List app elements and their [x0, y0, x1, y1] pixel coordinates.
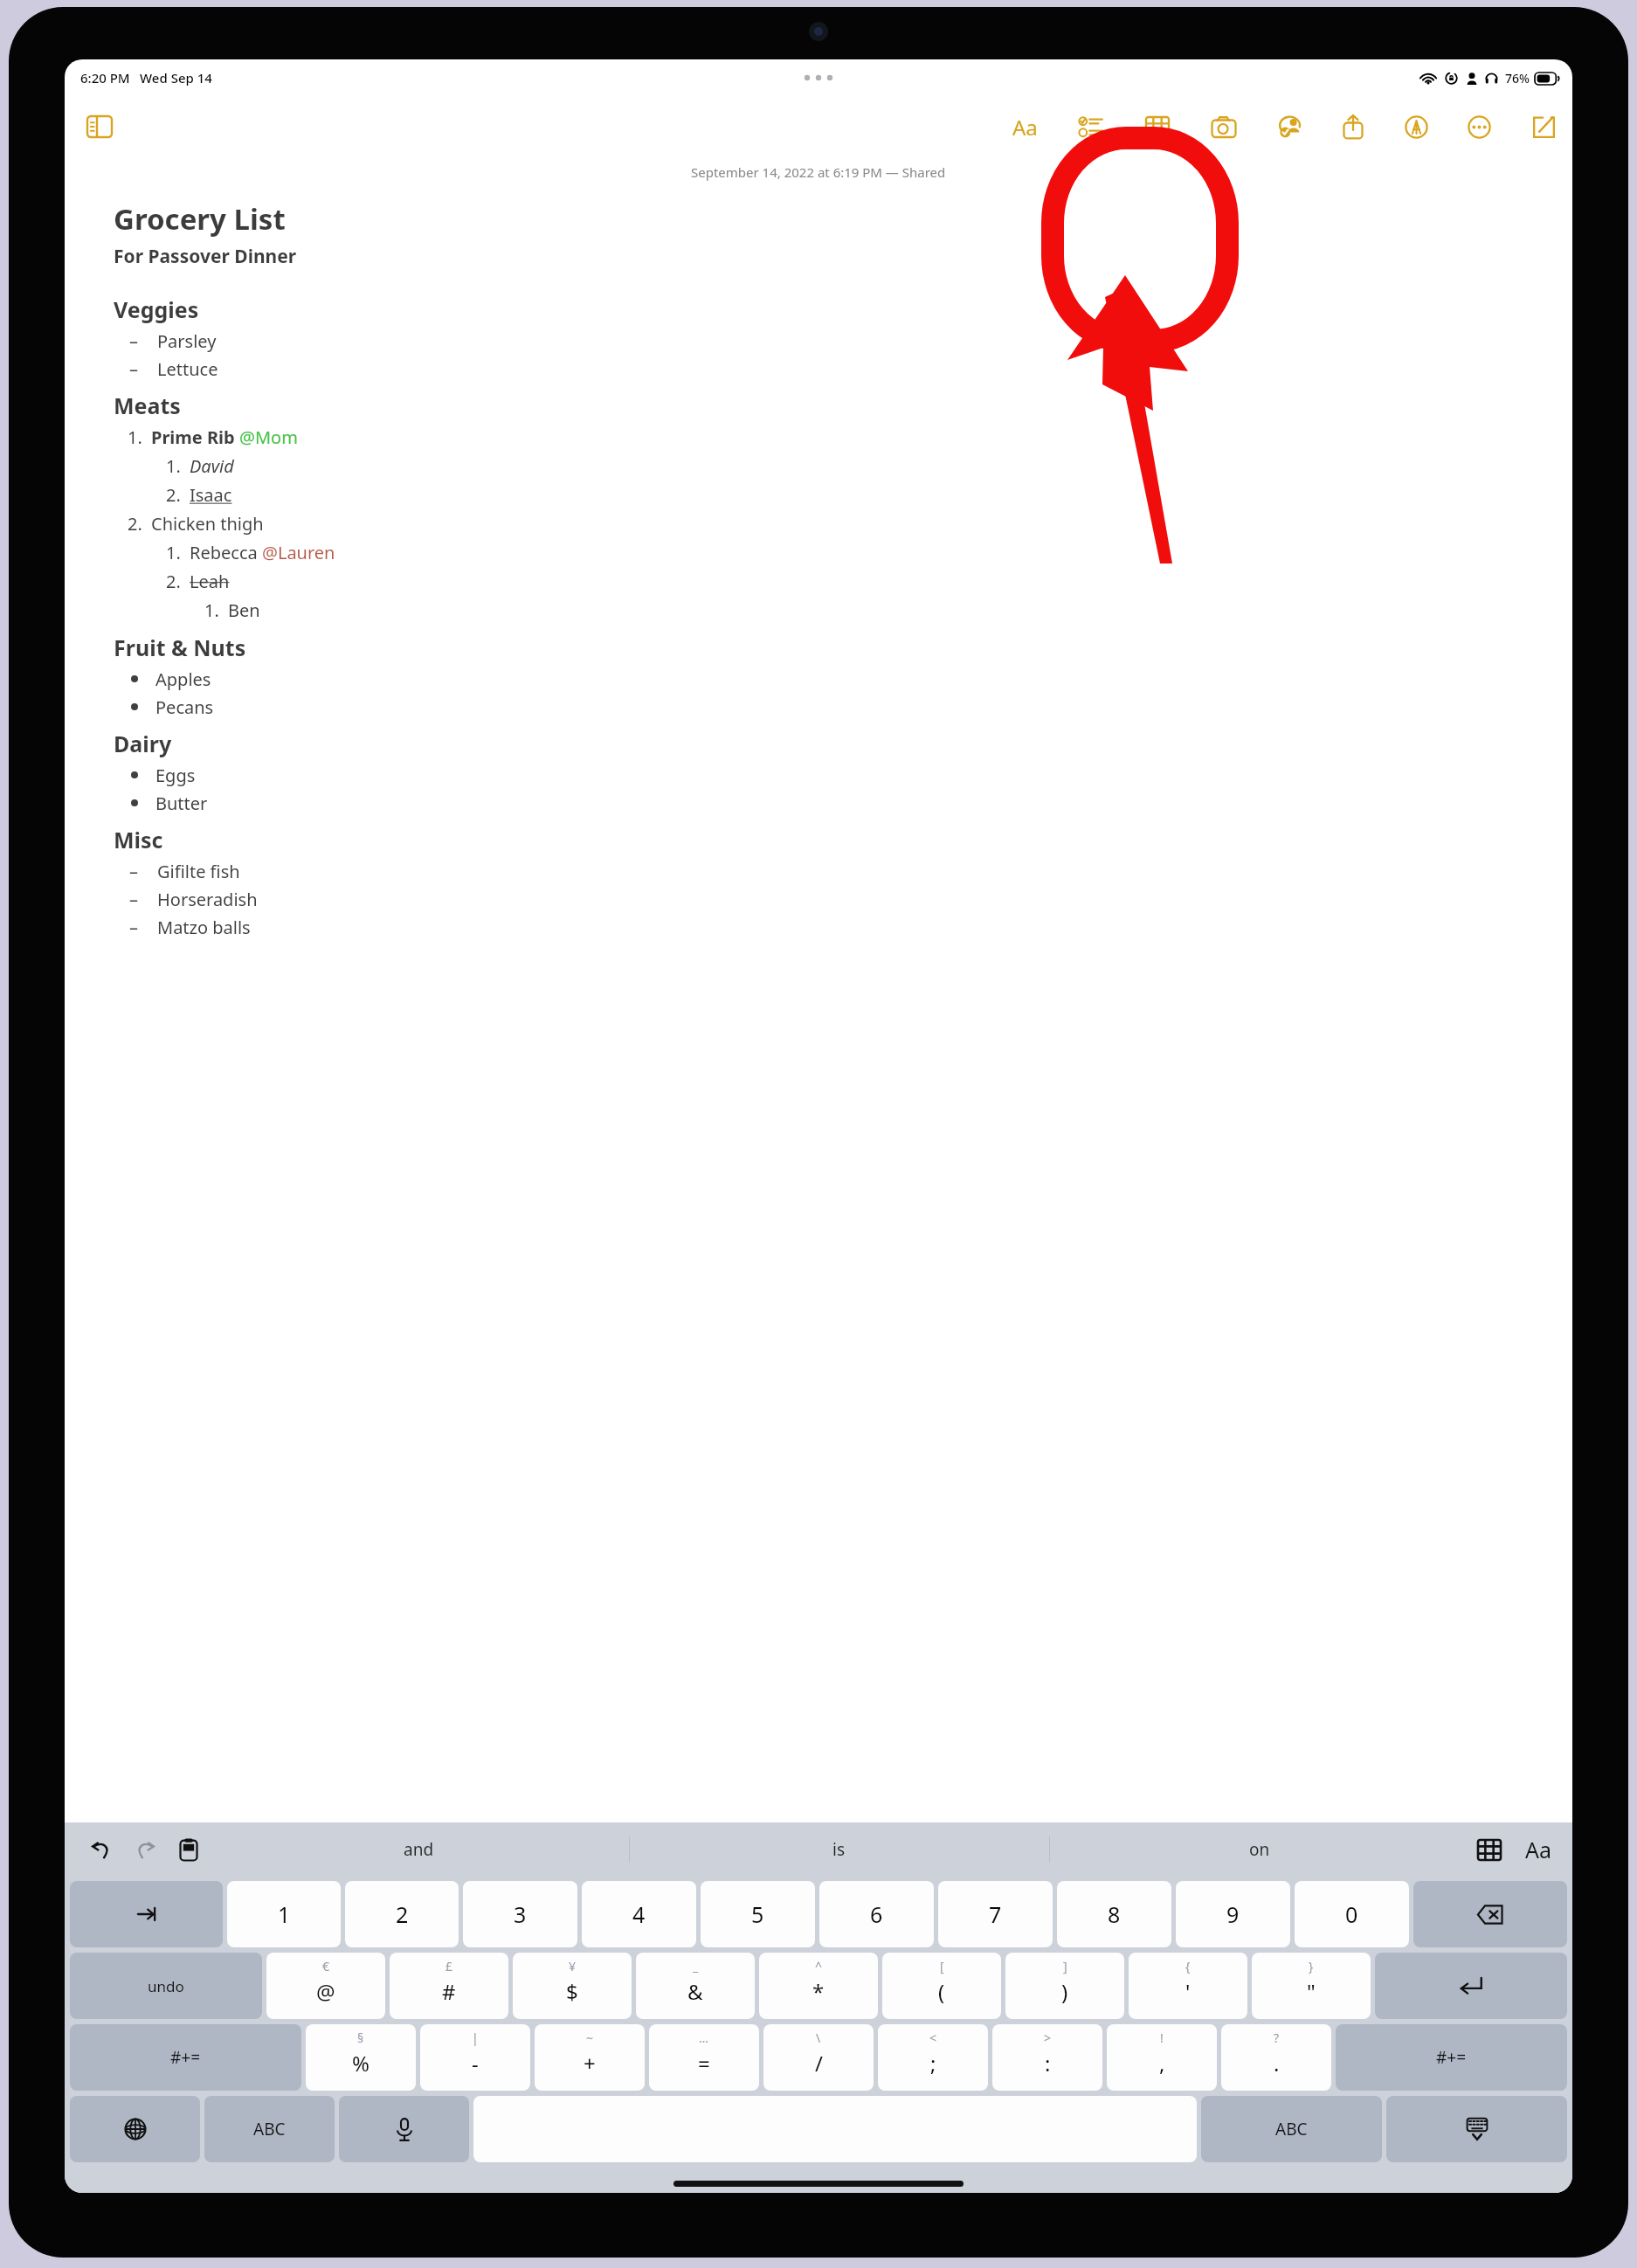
button[interactable]: Change keyboard — [70, 2096, 200, 2162]
button[interactable]: 6 — [819, 1881, 934, 1947]
button[interactable]: £ — [390, 1953, 508, 2019]
button[interactable]: { — [1129, 1953, 1247, 2019]
button[interactable]: ! — [1107, 2024, 1217, 2091]
button[interactable]: 0 — [1295, 1881, 1409, 1947]
button[interactable]: > — [992, 2024, 1102, 2091]
button[interactable]: Collaborate — [1270, 107, 1310, 147]
staticText: 3 — [514, 1899, 527, 1929]
button[interactable]: 2. — [114, 481, 1572, 509]
button[interactable]: – — [114, 355, 1572, 383]
staticText: _ — [693, 1958, 699, 1974]
staticText: Ben — [228, 598, 260, 622]
button[interactable]: Format — [1005, 107, 1045, 147]
staticText: % — [352, 2049, 370, 2078]
staticText: Butter — [155, 792, 208, 815]
staticText: @ — [316, 1977, 335, 2006]
staticText: Rebecca @Lauren — [190, 541, 335, 564]
button[interactable]: undo — [70, 1953, 262, 2019]
button[interactable]: [ — [882, 1953, 1001, 2019]
button[interactable]: Butter — [114, 789, 1572, 817]
button[interactable]: 1. — [114, 423, 1572, 452]
button[interactable]: < — [878, 2024, 988, 2091]
button[interactable]: 2. — [114, 567, 1572, 596]
staticText: = — [698, 2049, 710, 2078]
staticText: ABC — [1275, 2118, 1308, 2140]
button[interactable]: 1. — [114, 538, 1572, 567]
button[interactable]: Compose — [1523, 107, 1564, 147]
button[interactable]: and — [208, 1822, 629, 1877]
button[interactable]: – — [114, 857, 1572, 885]
button[interactable]: – — [114, 885, 1572, 913]
staticText: – — [129, 357, 138, 381]
button[interactable]: 1. — [114, 452, 1572, 481]
button[interactable]: 1 — [227, 1881, 341, 1947]
staticText: ) — [1061, 1977, 1068, 2006]
staticText: For Passover Dinner — [114, 244, 297, 269]
button[interactable]: 5 — [701, 1881, 815, 1947]
button[interactable]: Redo — [126, 1830, 164, 1869]
staticText: Leah — [190, 570, 230, 593]
button[interactable]: \ — [763, 2024, 874, 2091]
button[interactable]: Apples — [114, 665, 1572, 693]
button[interactable]: Checklist — [1071, 107, 1111, 147]
button[interactable]: #+= — [1336, 2024, 1567, 2091]
button[interactable]: More — [1459, 107, 1499, 147]
button[interactable]: 3 — [463, 1881, 577, 1947]
button[interactable]: Camera — [1204, 107, 1244, 147]
staticText: { — [1185, 1958, 1191, 1974]
button[interactable]: 4 — [582, 1881, 696, 1947]
button[interactable]: Format — [1518, 1829, 1558, 1870]
button[interactable]: 2 — [345, 1881, 459, 1947]
button[interactable]: 9 — [1176, 1881, 1290, 1947]
staticText: Veggies — [114, 294, 199, 324]
button[interactable]: ^ — [759, 1953, 878, 2019]
staticText: - — [472, 2049, 479, 2078]
button[interactable]: Tab — [70, 1881, 223, 1947]
staticText: 6 — [870, 1899, 883, 1929]
button[interactable]: #+= — [70, 2024, 301, 2091]
staticText: Fruit & Nuts — [114, 633, 246, 662]
button[interactable]: 7 — [938, 1881, 1053, 1947]
button[interactable]: 2. — [114, 509, 1572, 538]
button[interactable]: on — [1049, 1822, 1469, 1877]
button[interactable]: § — [306, 2024, 416, 2091]
button[interactable]: – — [114, 913, 1572, 941]
staticText: < — [929, 2029, 937, 2046]
button[interactable]: Pecans — [114, 693, 1572, 721]
button[interactable]: Share — [1333, 107, 1373, 147]
button[interactable]: Delete — [1413, 1881, 1567, 1947]
staticText: ] — [1063, 1958, 1067, 1974]
button[interactable]: ABC — [204, 2096, 335, 2162]
staticText: ABC — [253, 2118, 286, 2140]
button[interactable]: Markup — [1396, 107, 1436, 147]
staticText: 2 — [396, 1899, 409, 1929]
button[interactable]: 8 — [1057, 1881, 1171, 1947]
button[interactable]: Hide keyboard — [1386, 2096, 1567, 2162]
button[interactable]: _ — [636, 1953, 755, 2019]
staticText: & — [687, 1977, 703, 2006]
button[interactable]: ABC — [1201, 2096, 1382, 2162]
button[interactable]: Table — [1469, 1829, 1509, 1870]
button[interactable]: Dictate — [339, 2096, 469, 2162]
staticText: ' — [1185, 1977, 1191, 2006]
button[interactable]: Table — [1137, 107, 1178, 147]
button[interactable]: – — [114, 327, 1572, 355]
button[interactable]: Paste — [169, 1830, 208, 1869]
staticText: is — [832, 1838, 846, 1861]
staticText: Meats — [114, 391, 181, 420]
button[interactable]: } — [1252, 1953, 1371, 2019]
button[interactable]: Undo — [82, 1830, 121, 1869]
button[interactable]: € — [266, 1953, 385, 2019]
button[interactable]: ~ — [535, 2024, 645, 2091]
button[interactable]: ¥ — [513, 1953, 632, 2019]
button[interactable]: ? — [1221, 2024, 1331, 2091]
button[interactable]: 1. — [114, 596, 1572, 625]
button[interactable]: is — [629, 1822, 1049, 1877]
button[interactable]: Eggs — [114, 761, 1572, 789]
button[interactable]: Return — [1375, 1953, 1567, 2019]
button[interactable]: | — [420, 2024, 530, 2091]
button[interactable]: ] — [1005, 1953, 1124, 2019]
button[interactable]: … — [649, 2024, 759, 2091]
button[interactable]: Sidebar — [77, 104, 122, 149]
